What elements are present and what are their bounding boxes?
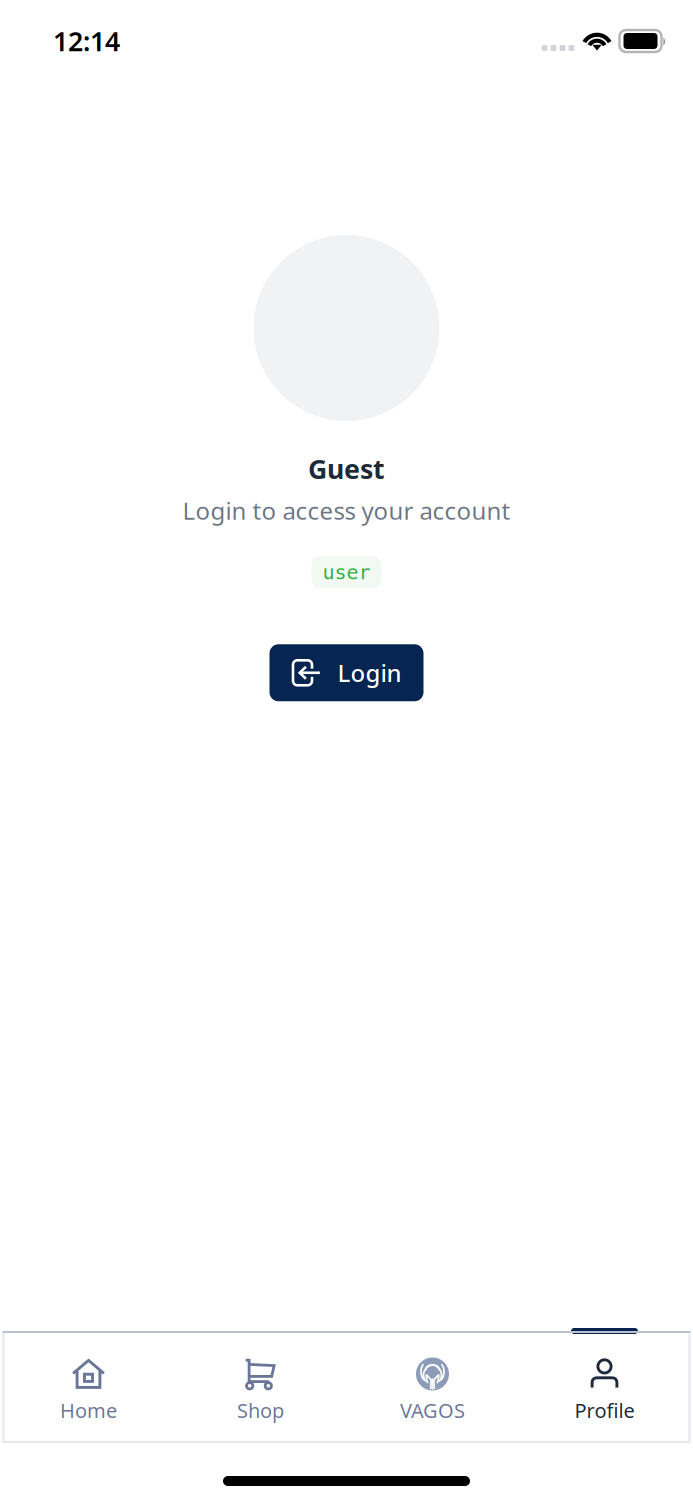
button[interactable]: VAGOS — [346, 1331, 518, 1443]
staticText: user — [322, 561, 370, 584]
button[interactable]: Profile — [518, 1331, 690, 1443]
button[interactable]: Login — [269, 644, 423, 701]
button[interactable]: Home — [2, 1331, 174, 1443]
button[interactable]: Shop — [174, 1331, 346, 1443]
staticText: Login to access your account — [182, 494, 510, 526]
staticText: Login — [337, 657, 401, 689]
staticText: Home — [60, 1397, 117, 1424]
staticText: 12:14 — [53, 23, 120, 59]
staticText: Shop — [237, 1397, 284, 1424]
staticText: Profile — [574, 1397, 634, 1424]
staticText: Guest — [308, 451, 385, 486]
staticText: VAGOS — [400, 1397, 465, 1424]
